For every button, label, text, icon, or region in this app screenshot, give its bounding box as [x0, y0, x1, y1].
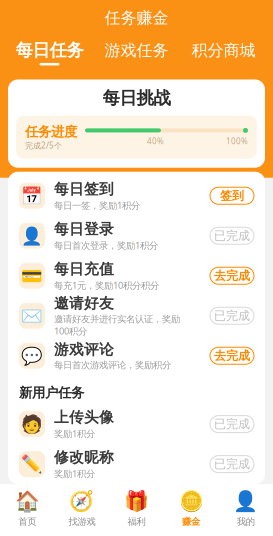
staticText: 每日登录 [54, 220, 114, 238]
staticText: ✉️ [21, 306, 43, 326]
staticText: 完成2/5个 [25, 140, 62, 151]
button[interactable]: 👤 [8, 216, 265, 256]
button[interactable]: 已完成 [210, 307, 254, 324]
staticText: 每日任务 [15, 40, 83, 61]
staticText: 首页 [18, 516, 36, 527]
staticText: 已完成 [214, 228, 250, 243]
staticText: 修改昵称 [54, 448, 114, 466]
staticText: 每充1元，奖励10积分积分 [54, 279, 159, 291]
button[interactable]: 👤 [218, 490, 273, 527]
button[interactable]: 积分商城 [180, 38, 267, 67]
staticText: 游戏任务 [104, 40, 168, 60]
staticText: 去完成 [214, 268, 250, 283]
staticText: 赚金 [182, 516, 200, 527]
staticText: 🧑 [21, 414, 43, 434]
staticText: 每日充值 [54, 260, 114, 278]
staticText: 上传头像 [54, 408, 114, 426]
staticText: 已完成 [214, 457, 250, 471]
staticText: 已完成 [214, 308, 250, 323]
staticText: 每日签到 [54, 180, 114, 198]
staticText: 💳 [21, 266, 43, 286]
staticText: 签到 [220, 188, 244, 203]
staticText: 我的 [237, 516, 255, 527]
staticText: 👤 [21, 226, 43, 246]
staticText: 每日一签，奖励1积分 [54, 199, 140, 211]
button[interactable]: 💳 [8, 256, 265, 296]
button[interactable]: 签到 [210, 187, 254, 204]
button[interactable]: 去完成 [210, 347, 254, 364]
staticText: 40% [147, 136, 164, 146]
staticText: 🪙 [179, 490, 204, 513]
staticText: 奖励1积分 [54, 427, 95, 440]
button[interactable]: 🎁 [109, 490, 164, 527]
button[interactable]: 每日任务 [6, 38, 93, 67]
staticText: 福利 [127, 516, 145, 527]
staticText: 👤 [233, 490, 258, 513]
button[interactable]: ✏️ [8, 444, 265, 484]
button[interactable]: 🧑 [8, 404, 265, 444]
staticText: 任务进度 [25, 124, 77, 140]
button[interactable]: 💬 [8, 336, 265, 376]
button[interactable]: 已完成 [210, 456, 254, 473]
staticText: 每日首次登录，奖励1积分 [54, 239, 158, 251]
staticText: 邀请好友并进行实名认证，奖励100积分 [54, 313, 180, 337]
button[interactable]: 📅 [8, 176, 265, 216]
staticText: 🎁 [124, 490, 149, 513]
staticText: 任务赚金 [104, 8, 168, 28]
staticText: ✏️ [21, 454, 43, 474]
button[interactable]: 已完成 [210, 416, 254, 433]
staticText: 🏠 [15, 490, 40, 513]
staticText: 100% [226, 136, 248, 146]
staticText: 🧭 [69, 490, 94, 513]
staticText: 📅 [21, 186, 43, 206]
button[interactable]: 🧭 [55, 490, 109, 527]
staticText: 去完成 [214, 348, 250, 363]
staticText: 每日挑战 [102, 87, 170, 109]
button[interactable]: 🪙 [164, 490, 218, 527]
staticText: 游戏评论 [54, 340, 114, 358]
button[interactable]: 已完成 [210, 227, 254, 244]
button[interactable]: 🏠 [0, 490, 55, 527]
staticText: 找游戏 [68, 516, 95, 527]
staticText: 💬 [21, 346, 43, 366]
button[interactable]: ✉️ [8, 296, 265, 336]
staticText: 新用户任务 [19, 385, 84, 401]
staticText: 奖励1积分 [54, 467, 95, 480]
staticText: 积分商城 [191, 40, 255, 60]
staticText: 已完成 [214, 417, 250, 431]
button[interactable]: 游戏任务 [93, 38, 180, 67]
button[interactable]: 去完成 [210, 267, 254, 284]
staticText: 每日首次游戏评论，奖励积分 [54, 359, 171, 371]
staticText: 邀请好友 [54, 294, 114, 312]
